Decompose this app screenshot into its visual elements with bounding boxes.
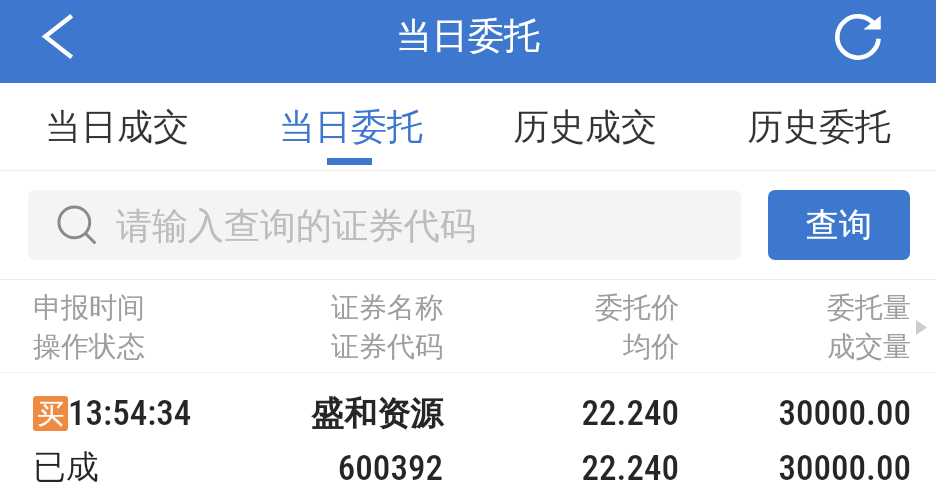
button[interactable]: Refresh [816, 0, 900, 83]
staticText: 盛和资源 [210, 393, 443, 435]
staticText: 当日委托 [279, 104, 423, 149]
staticText: 22.240 [446, 393, 679, 434]
button[interactable]: Back [14, 0, 98, 83]
staticText: 均价 [623, 329, 679, 364]
button[interactable]: 买 [0, 373, 936, 500]
staticText: 请输入查询的证券代码 [116, 203, 476, 248]
staticText: 委托价 [595, 290, 679, 325]
button[interactable]: 请输入查询的证券代码 [28, 190, 741, 260]
staticText: 证券代码 [331, 329, 443, 364]
staticText: 已成 [33, 446, 99, 488]
button[interactable]: 历史委托 [702, 83, 936, 170]
staticText: 当日成交 [45, 104, 189, 149]
staticText: 证券名称 [331, 290, 443, 325]
staticText: 30000.00 [678, 393, 911, 434]
staticText: 30000.00 [678, 448, 911, 489]
button[interactable]: 历史成交 [468, 83, 702, 170]
staticText: 申报时间 [33, 290, 145, 325]
staticText: 600392 [210, 448, 443, 489]
staticText: 委托量 [827, 290, 911, 325]
staticText: 成交量 [827, 329, 911, 364]
staticText: 历史委托 [747, 104, 891, 149]
staticText: 操作状态 [33, 329, 145, 364]
staticText: 买 [37, 397, 64, 431]
button[interactable]: 查询 [768, 190, 910, 260]
staticText: 当日委托 [396, 13, 540, 58]
button[interactable]: 当日委托 [234, 83, 468, 170]
staticText: 13:54:34 [68, 393, 192, 434]
staticText: 22.240 [446, 448, 679, 489]
staticText: 历史成交 [513, 104, 657, 149]
staticText: 查询 [806, 204, 872, 246]
button[interactable]: 当日成交 [0, 83, 234, 170]
